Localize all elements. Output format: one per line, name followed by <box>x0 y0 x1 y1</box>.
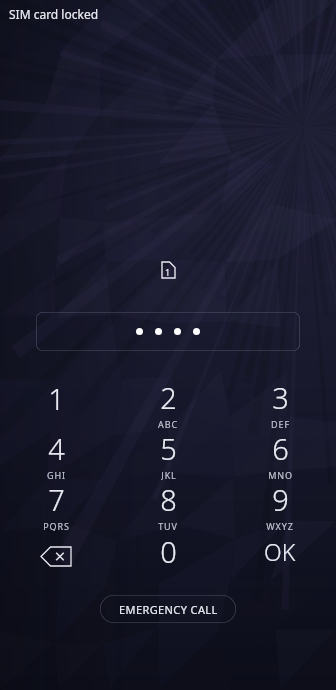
button[interactable]: 3 <box>224 378 336 429</box>
button[interactable]: 7 <box>0 480 112 531</box>
staticText: 3 <box>272 378 289 417</box>
button[interactable]: 2 <box>112 378 224 429</box>
staticText: 9 <box>272 480 289 519</box>
staticText: 0 <box>160 532 177 571</box>
staticText: 7 <box>48 480 65 519</box>
button[interactable]: 8 <box>112 480 224 531</box>
button[interactable]: 6 <box>224 429 336 480</box>
staticText: WXYZ <box>266 520 294 531</box>
button[interactable] <box>36 312 300 351</box>
button[interactable]: Backspace <box>0 531 112 582</box>
button[interactable]: 1 <box>0 378 112 429</box>
button[interactable]: 0 <box>112 531 224 582</box>
staticText: PQRS <box>43 520 70 531</box>
button[interactable]: EMERGENCY CALL <box>100 595 236 623</box>
staticText: EMERGENCY CALL <box>119 602 218 617</box>
staticText: ABC <box>158 418 178 429</box>
staticText: 2 <box>160 378 177 417</box>
staticText: 6 <box>272 429 289 468</box>
staticText: 1 <box>165 266 171 278</box>
button[interactable]: 4 <box>0 429 112 480</box>
button[interactable]: 9 <box>224 480 336 531</box>
staticText: DEF <box>271 418 290 429</box>
staticText: 5 <box>160 429 177 468</box>
staticText: JKL <box>161 469 177 480</box>
staticText: OK <box>264 536 296 567</box>
staticText: GHI <box>47 469 66 480</box>
staticText: TUV <box>158 520 178 531</box>
button[interactable]: OK <box>224 531 336 582</box>
staticText: 4 <box>48 429 65 468</box>
staticText: 8 <box>160 480 177 519</box>
staticText: 1 <box>48 379 65 418</box>
staticText: SIM card locked <box>9 6 99 22</box>
staticText: MNO <box>268 469 293 480</box>
button[interactable]: 5 <box>112 429 224 480</box>
